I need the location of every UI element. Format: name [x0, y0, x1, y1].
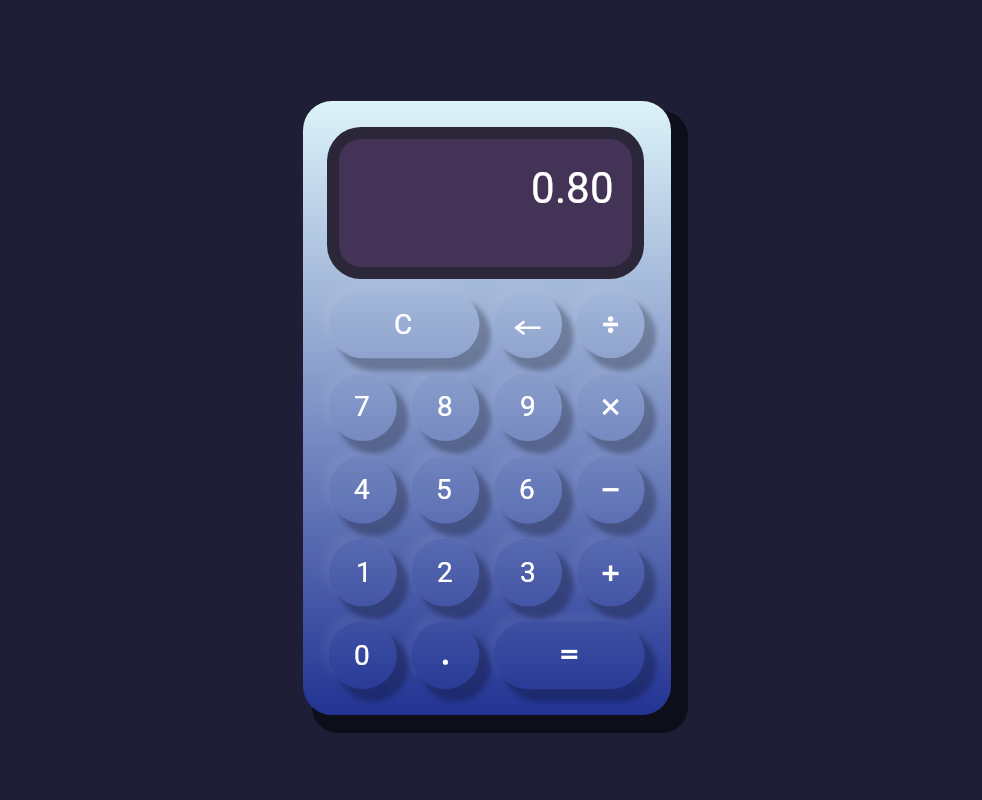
button[interactable]: 7: [329, 373, 397, 441]
button[interactable]: 1: [329, 539, 397, 607]
button[interactable]: Clear: [329, 290, 480, 358]
button[interactable]: 0: [329, 621, 397, 689]
button[interactable]: Subtract: [577, 456, 645, 524]
button[interactable]: Divide: [577, 290, 645, 358]
button[interactable]: 2: [411, 539, 479, 607]
button[interactable]: 6: [494, 456, 562, 524]
button[interactable]: 8: [411, 373, 479, 441]
button[interactable]: Equals: [494, 621, 645, 689]
button[interactable]: Backspace: [494, 290, 562, 358]
button[interactable]: 5: [411, 456, 479, 524]
button[interactable]: 9: [494, 373, 562, 441]
button[interactable]: Multiply: [577, 373, 645, 441]
button[interactable]: Decimal point: [411, 621, 479, 689]
button[interactable]: Add: [577, 539, 645, 607]
button[interactable]: 4: [329, 456, 397, 524]
button[interactable]: 3: [494, 539, 562, 607]
